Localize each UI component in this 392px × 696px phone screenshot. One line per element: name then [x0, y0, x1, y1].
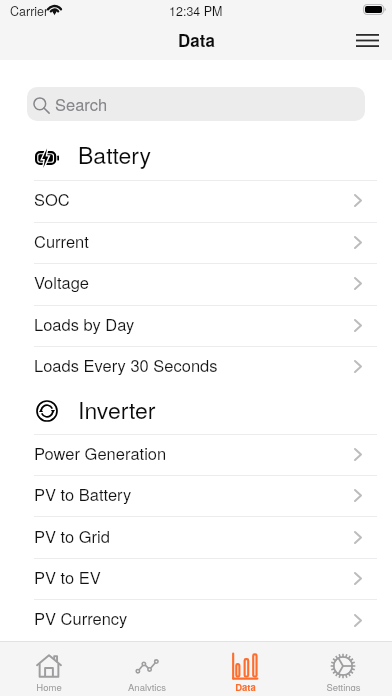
- button[interactable]: [0, 263, 392, 305]
- staticText: Carrier: [10, 2, 49, 20]
- button[interactable]: Data: [196, 642, 294, 696]
- staticText: PV Currency: [34, 606, 128, 628]
- staticText: Battery: [78, 138, 152, 170]
- button[interactable]: [0, 305, 392, 347]
- button[interactable]: Analytics: [98, 642, 196, 696]
- button[interactable]: [0, 180, 392, 222]
- staticText: Settings: [326, 680, 361, 691]
- staticText: Data: [235, 680, 256, 691]
- button[interactable]: [0, 434, 392, 475]
- button[interactable]: Search: [27, 87, 365, 121]
- staticText: Current: [34, 229, 89, 251]
- staticText: PV to Battery: [34, 482, 132, 504]
- staticText: Loads Every 30 Seconds: [34, 353, 218, 375]
- staticText: PV to EV: [34, 565, 101, 587]
- button[interactable]: [0, 475, 392, 516]
- button[interactable]: [0, 516, 392, 557]
- staticText: PV to Grid: [34, 524, 110, 546]
- staticText: SOC: [34, 187, 70, 209]
- staticText: Voltage: [34, 270, 90, 292]
- staticText: Analytics: [128, 680, 166, 691]
- staticText: Data: [178, 28, 215, 52]
- button[interactable]: [0, 222, 392, 264]
- button[interactable]: [0, 599, 392, 640]
- staticText: Search: [55, 92, 108, 116]
- button[interactable]: Menu: [348, 21, 392, 60]
- staticText: Home: [36, 680, 62, 691]
- button[interactable]: Settings: [294, 642, 392, 696]
- button[interactable]: [0, 346, 392, 388]
- button[interactable]: Home: [0, 642, 98, 696]
- button[interactable]: [0, 558, 392, 599]
- staticText: Inverter: [78, 393, 156, 425]
- staticText: Loads by Day: [34, 312, 135, 334]
- staticText: Power Generation: [34, 441, 167, 463]
- staticText: 12:34 PM: [169, 2, 223, 20]
